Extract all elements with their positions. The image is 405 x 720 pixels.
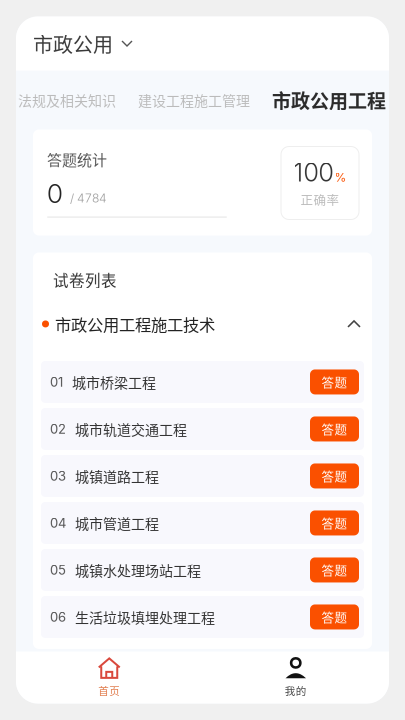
button[interactable]: 01: [41, 361, 364, 403]
staticText: 答题: [321, 514, 347, 532]
staticText: 市政公用: [33, 29, 113, 58]
staticText: 试卷列表: [53, 268, 117, 291]
staticText: 04: [50, 515, 66, 531]
staticText: 建设工程施工管理: [138, 90, 250, 110]
button[interactable]: 06: [41, 596, 364, 638]
staticText: 答题: [321, 373, 347, 391]
button[interactable]: 04: [41, 502, 364, 544]
staticText: 我的: [285, 683, 307, 698]
staticText: 答题: [321, 420, 347, 438]
staticText: 市政公用工程施工技术: [55, 312, 215, 336]
staticText: 05: [50, 562, 66, 578]
staticText: 正确率: [300, 191, 339, 209]
staticText: 城镇水处理场站工程: [75, 560, 201, 580]
staticText: %: [334, 170, 346, 185]
staticText: 市政公用工程: [272, 86, 386, 114]
button[interactable]: 市政公用工程施工技术: [33, 306, 372, 342]
staticText: 答题: [321, 561, 347, 579]
button[interactable]: 市政公用: [16, 16, 141, 70]
staticText: 03: [50, 468, 66, 484]
staticText: 生活垃圾填埋处理工程: [75, 607, 215, 627]
staticText: 城镇道路工程: [75, 466, 159, 486]
staticText: 0: [47, 178, 63, 209]
staticText: 100: [293, 157, 333, 187]
staticText: 首页: [98, 683, 120, 698]
button[interactable]: 02: [41, 408, 364, 450]
staticText: 城市桥梁工程: [72, 372, 156, 392]
staticText: 法规及相关知识: [18, 90, 116, 110]
staticText: / 4784: [70, 191, 107, 205]
staticText: 02: [50, 421, 66, 437]
button[interactable]: 05: [41, 549, 364, 591]
button[interactable]: 03: [41, 455, 364, 497]
button[interactable]: 首页: [16, 651, 202, 703]
staticText: 城市轨道交通工程: [75, 419, 187, 439]
button[interactable]: 我的: [202, 651, 389, 703]
staticText: 答题统计: [47, 148, 107, 170]
staticText: 城市管道工程: [75, 513, 159, 533]
staticText: 答题: [321, 467, 347, 485]
staticText: 答题: [321, 608, 347, 626]
staticText: 06: [50, 609, 66, 625]
staticText: 01: [50, 374, 63, 390]
